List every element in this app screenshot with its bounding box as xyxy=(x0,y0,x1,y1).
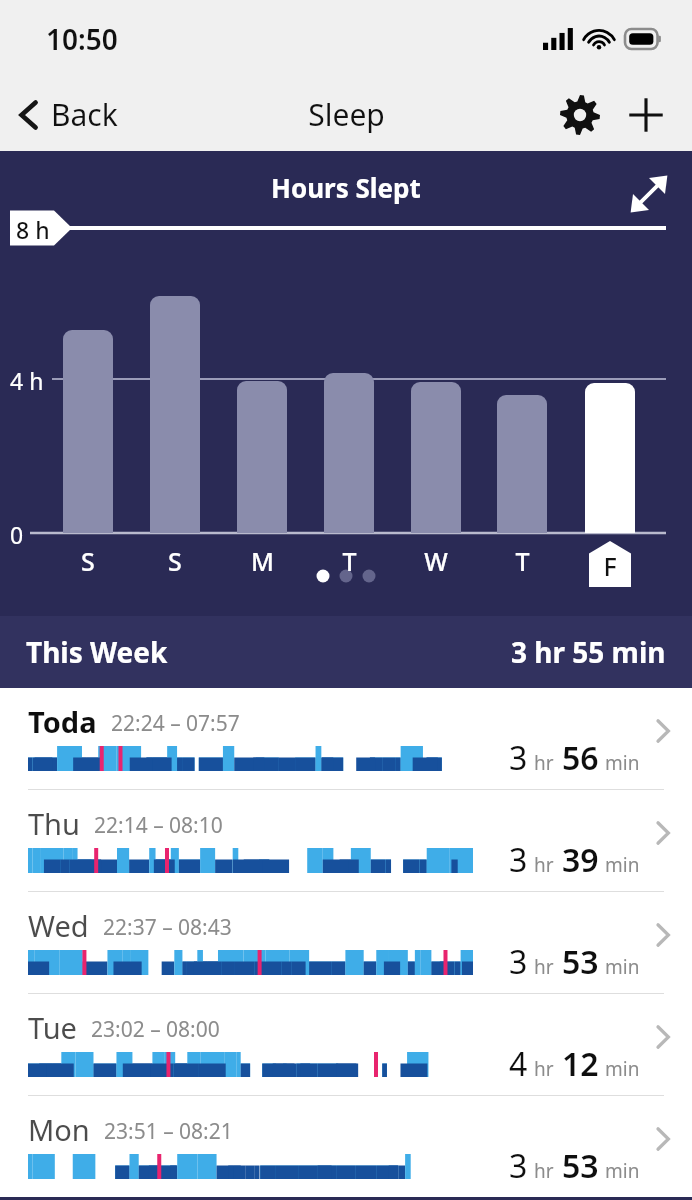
staticText: 4 xyxy=(509,1042,528,1086)
button[interactable]: Expand chart xyxy=(620,165,678,223)
staticText: Tue xyxy=(28,1008,77,1047)
staticText: min xyxy=(605,954,640,980)
staticText: min xyxy=(605,852,640,878)
staticText: 3 xyxy=(509,838,528,882)
staticText: 3 xyxy=(509,736,528,780)
staticText: This Week xyxy=(26,633,168,671)
staticText: 53 xyxy=(562,1144,599,1188)
staticText: 8 h xyxy=(16,214,50,245)
staticText: hr xyxy=(534,1056,554,1082)
staticText: 3 hr 55 min xyxy=(511,633,666,671)
staticText: Toda xyxy=(28,702,97,741)
staticText: Mon xyxy=(28,1110,90,1149)
button[interactable]: Add xyxy=(618,87,674,143)
button[interactable]: Wed xyxy=(0,892,692,993)
staticText: hr xyxy=(534,852,554,878)
staticText: 22:14 – 08:10 xyxy=(94,811,223,840)
staticText: 23:51 – 08:21 xyxy=(104,1117,233,1146)
staticText: 0 xyxy=(10,519,24,550)
staticText: hr xyxy=(534,750,554,776)
button[interactable]: Back xyxy=(0,84,136,145)
staticText: Wed xyxy=(28,906,89,945)
staticText: T xyxy=(342,544,357,578)
staticText: S xyxy=(81,544,95,578)
staticText: W xyxy=(424,544,448,578)
button[interactable]: Toda xyxy=(0,688,692,789)
staticText: 12 xyxy=(562,1042,599,1086)
staticText: 3 xyxy=(509,1144,528,1188)
staticText: 23:02 – 08:00 xyxy=(91,1015,220,1044)
staticText: min xyxy=(605,1158,640,1184)
staticText: min xyxy=(605,1056,640,1082)
staticText: Thu xyxy=(28,804,80,843)
button[interactable]: Mon xyxy=(0,1096,692,1197)
staticText: Sleep xyxy=(308,94,385,135)
staticText: 56 xyxy=(562,736,599,780)
staticText: S xyxy=(168,544,182,578)
staticText: 3 xyxy=(509,940,528,984)
staticText: hr xyxy=(534,1158,554,1184)
staticText: T xyxy=(515,544,530,578)
staticText: 22:24 – 07:57 xyxy=(111,709,240,738)
staticText: 39 xyxy=(562,838,599,882)
button[interactable]: This Week xyxy=(0,616,692,688)
staticText: 53 xyxy=(562,940,599,984)
staticText: 22:37 – 08:43 xyxy=(103,913,232,942)
staticText: M xyxy=(251,544,274,578)
staticText: F xyxy=(603,549,617,583)
staticText: 4 h xyxy=(10,365,44,396)
button[interactable]: Thu xyxy=(0,790,692,891)
staticText: hr xyxy=(534,954,554,980)
staticText: 10:50 xyxy=(46,20,118,58)
staticText: Hours Slept xyxy=(271,170,421,205)
staticText: min xyxy=(605,750,640,776)
button[interactable]: Tue xyxy=(0,994,692,1095)
staticText: Back xyxy=(51,94,118,135)
button[interactable]: Settings xyxy=(552,87,608,143)
